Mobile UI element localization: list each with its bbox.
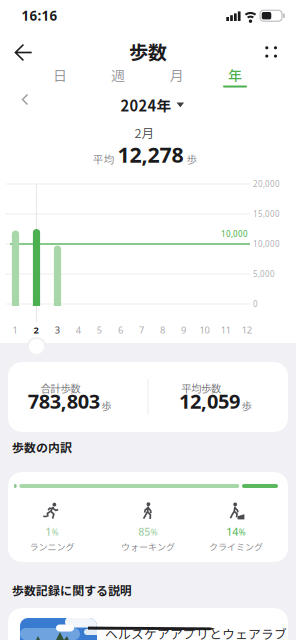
staticText: 9 — [181, 324, 186, 336]
staticText: 5 — [97, 324, 102, 336]
button[interactable]: ヘルスケアアプリとウェアラブ — [8, 608, 288, 640]
staticText: 16:16 — [21, 7, 57, 24]
button[interactable]: 週 — [89, 62, 147, 88]
staticText: % — [151, 527, 158, 538]
staticText: 3 — [55, 324, 60, 336]
staticText: ウォーキング — [121, 540, 175, 553]
button[interactable]: 年 — [206, 62, 264, 88]
button[interactable]: Select year — [120, 93, 184, 117]
staticText: 11 — [221, 324, 231, 336]
staticText: 8 — [160, 324, 165, 336]
staticText: 2 — [33, 324, 38, 336]
staticText: 15,000 — [253, 209, 280, 219]
staticText: % — [239, 527, 246, 538]
button[interactable]: More options — [262, 43, 280, 60]
staticText: 2月 — [134, 123, 154, 142]
staticText: 20,000 — [253, 179, 280, 189]
staticText: 平均 — [92, 151, 114, 167]
staticText: ランニング — [29, 540, 74, 553]
staticText: 783,803 — [28, 388, 100, 414]
staticText: 4 — [76, 324, 81, 336]
staticText: 2024年 — [120, 94, 171, 116]
button[interactable]: 月 — [148, 62, 206, 88]
staticText: 平均歩数 — [181, 380, 221, 396]
staticText: ヘルスケアアプリとウェアラブ — [105, 624, 287, 640]
staticText: 12 — [242, 324, 252, 336]
staticText: 7 — [139, 324, 144, 336]
staticText: 5,000 — [253, 269, 275, 279]
staticText: 85 — [138, 524, 150, 539]
staticText: 日 — [53, 65, 67, 85]
staticText: 10 — [200, 324, 210, 336]
staticText: 6 — [118, 324, 123, 336]
staticText: 年 — [228, 65, 242, 85]
button[interactable]: Back — [8, 37, 38, 67]
staticText: 1 — [12, 324, 17, 336]
staticText: 12,278 — [117, 140, 183, 169]
staticText: 歩数記録に関する説明 — [12, 581, 132, 599]
staticText: クライミング — [209, 540, 263, 553]
staticText: 歩数の内訳 — [12, 438, 72, 456]
staticText: 歩 — [101, 398, 111, 413]
staticText: 14 — [226, 524, 238, 539]
button[interactable]: 日 — [31, 62, 89, 88]
staticText: 歩数 — [129, 37, 167, 65]
staticText: 合計歩数 — [40, 380, 80, 396]
staticText: 月 — [170, 65, 184, 85]
staticText: 0 — [253, 299, 258, 309]
staticText: 12,059 — [179, 388, 240, 414]
staticText: 週 — [111, 65, 125, 85]
staticText: 歩 — [242, 398, 252, 413]
staticText: 10,000 — [221, 229, 248, 239]
staticText: 歩 — [186, 151, 197, 167]
staticText: % — [52, 527, 59, 538]
staticText: 1 — [45, 524, 51, 539]
button[interactable]: Previous year — [21, 93, 45, 117]
staticText: 10,000 — [253, 239, 280, 249]
